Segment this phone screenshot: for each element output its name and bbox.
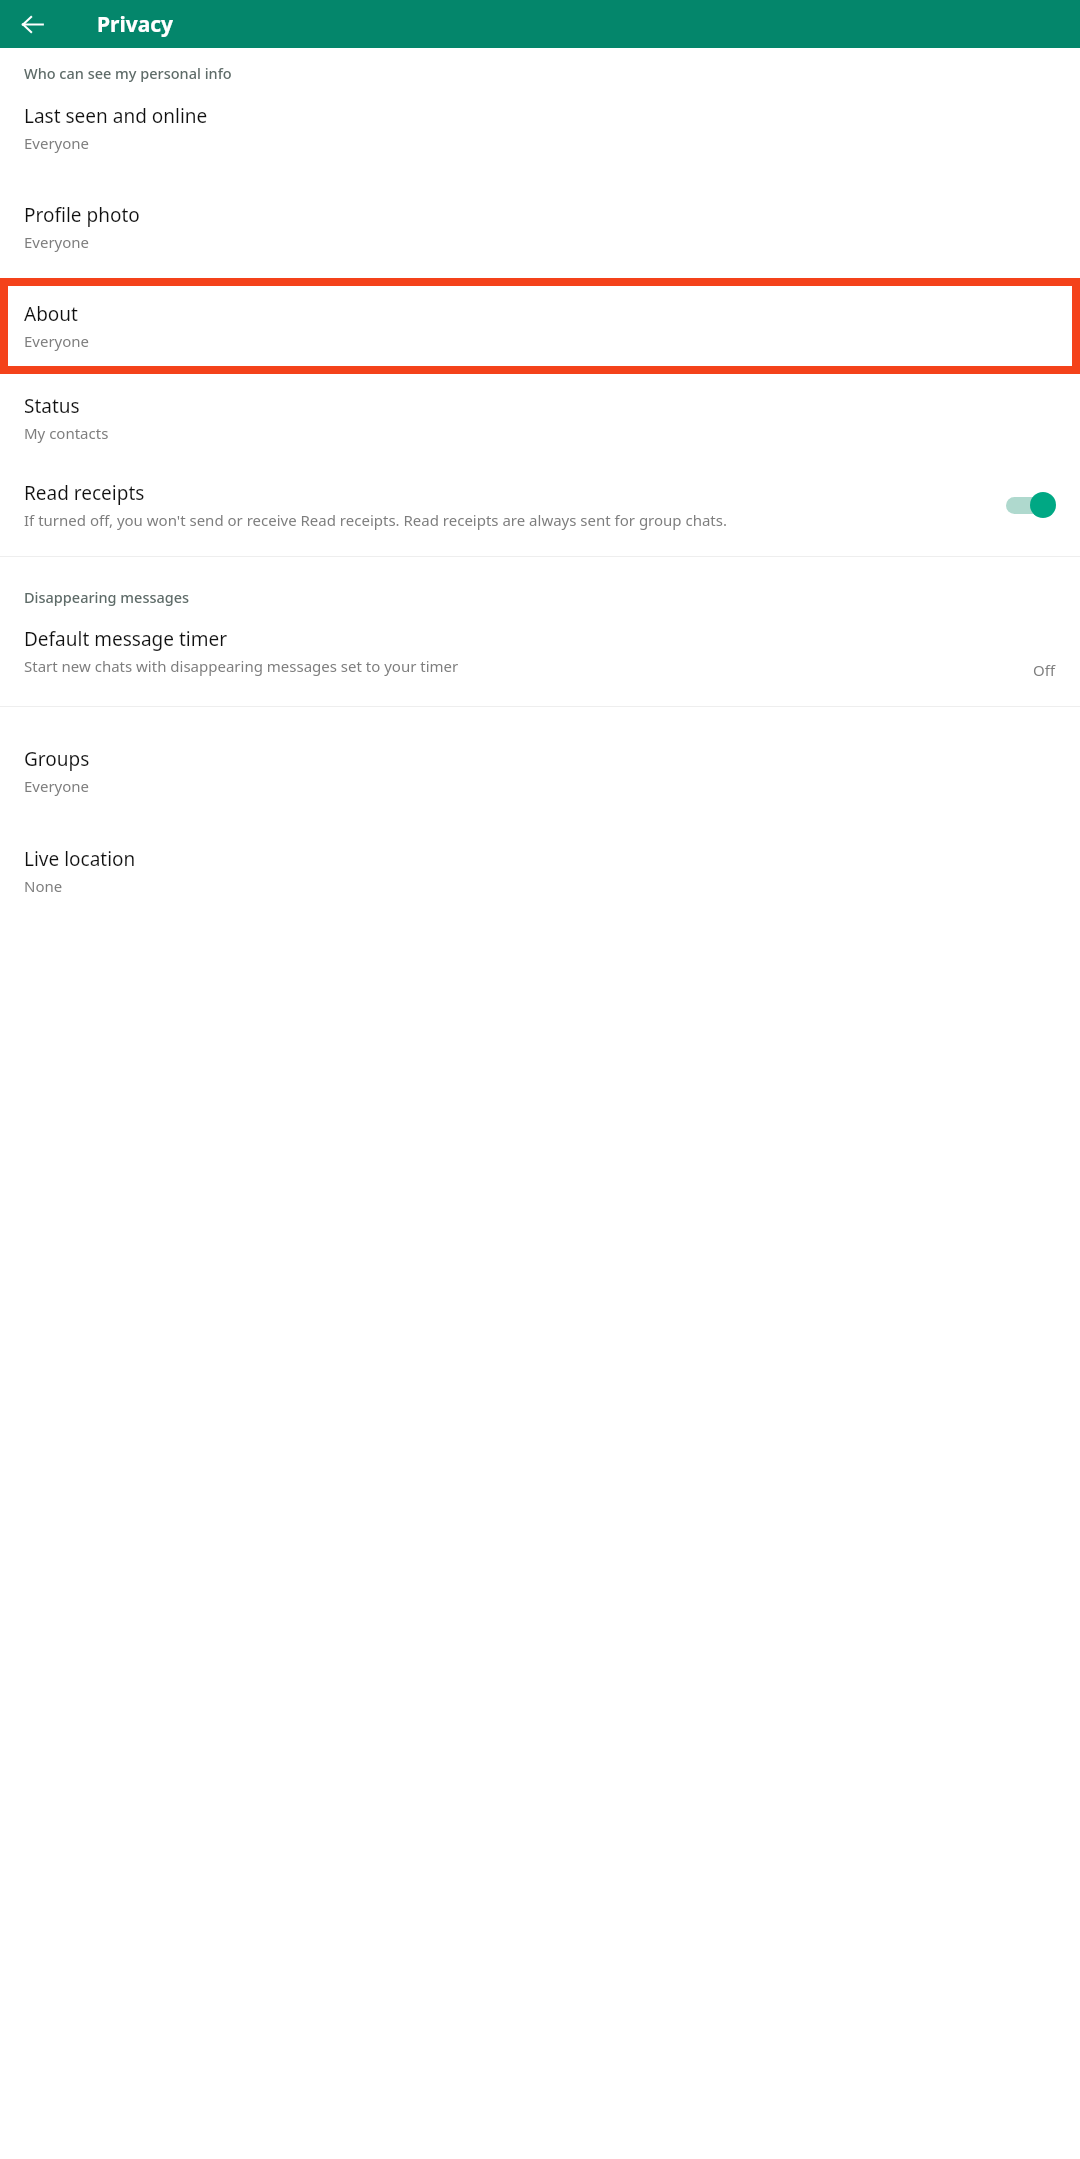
button[interactable]: Last seen and online [0, 83, 1080, 171]
staticText: Live location [24, 846, 136, 872]
staticText: Everyone [24, 331, 90, 351]
staticText: Off [1033, 660, 1056, 680]
staticText: Everyone [24, 776, 90, 796]
staticText: Groups [24, 746, 90, 772]
staticText: Profile photo [24, 202, 140, 228]
button[interactable]: Profile photo [0, 171, 1080, 270]
staticText: Start new chats with disappearing messag… [24, 656, 459, 676]
staticText: Everyone [24, 232, 90, 252]
button[interactable]: Groups [0, 707, 1080, 814]
button[interactable]: About [8, 286, 1072, 366]
staticText: My contacts [24, 423, 109, 443]
button[interactable]: Default message timer [0, 607, 1080, 680]
button[interactable]: Read receipts [0, 461, 1080, 530]
staticText: Status [24, 393, 80, 419]
button[interactable]: Back [8, 0, 56, 48]
staticText: If turned off, you won't send or receive… [24, 510, 727, 530]
button[interactable]: Status [0, 374, 1080, 461]
button[interactable]: Live location [0, 814, 1080, 914]
staticText: About [24, 301, 78, 327]
staticText: Read receipts [24, 480, 145, 506]
staticText: Last seen and online [24, 103, 208, 129]
staticText: None [24, 876, 63, 896]
staticText: Everyone [24, 133, 90, 153]
staticText: Who can see my personal info [24, 63, 1080, 83]
staticText: Disappearing messages [24, 587, 1080, 607]
staticText: Privacy [97, 10, 174, 39]
staticText: Default message timer [24, 626, 227, 652]
